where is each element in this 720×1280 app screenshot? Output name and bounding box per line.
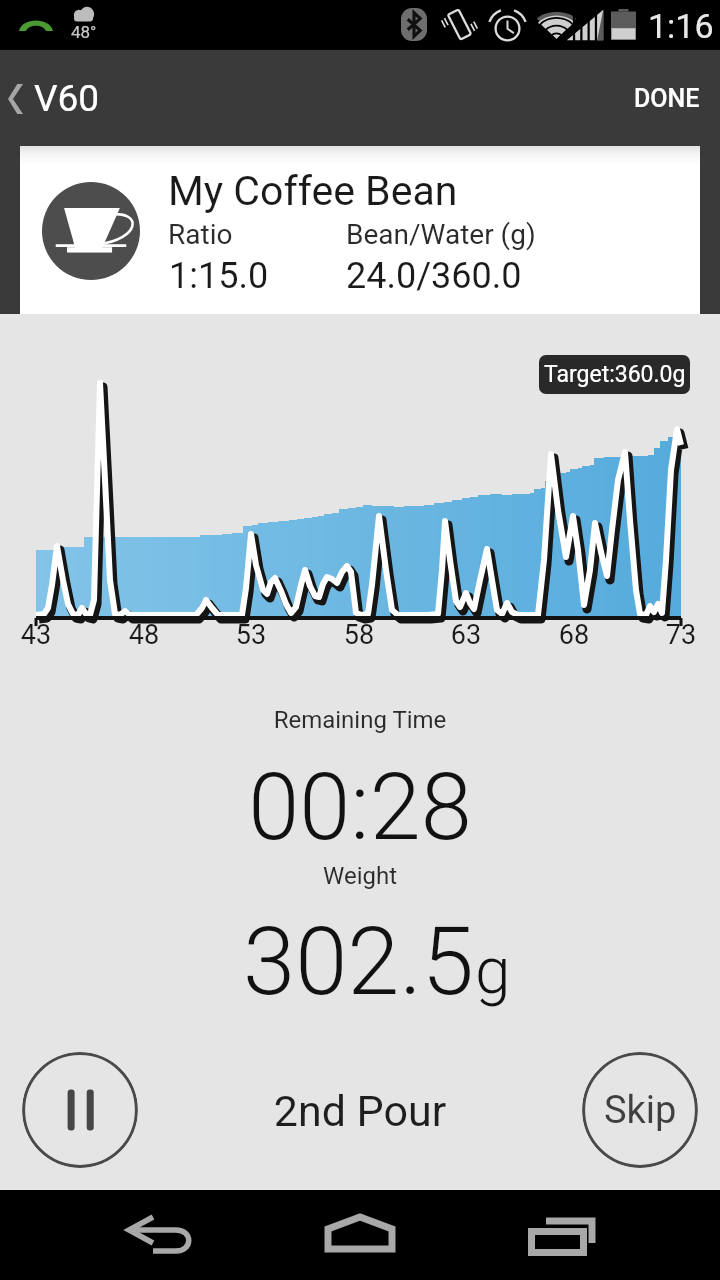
- staticText: 1:16: [648, 6, 714, 46]
- staticText: 24.0/360.0: [346, 255, 522, 297]
- staticText: 302.5: [243, 907, 475, 1017]
- staticText: 48°: [71, 22, 97, 42]
- button[interactable]: Home: [310, 1190, 410, 1280]
- button[interactable]: Skip: [582, 1052, 698, 1168]
- staticText: 53: [231, 619, 271, 651]
- staticText: 1:15.0: [169, 255, 269, 297]
- staticText: 68: [554, 619, 594, 651]
- staticText: V60: [34, 77, 100, 120]
- button[interactable]: Pause: [22, 1052, 138, 1168]
- staticText: 63: [446, 619, 486, 651]
- staticText: 2nd Pour: [0, 1086, 720, 1136]
- staticText: 48: [124, 619, 164, 651]
- staticText: Ratio: [168, 218, 233, 251]
- button[interactable]: Target:360.0g: [539, 355, 690, 394]
- staticText: My Coffee Bean: [168, 167, 458, 215]
- other: Back: [8, 84, 23, 114]
- button[interactable]: My Coffee Bean: [20, 146, 700, 314]
- button[interactable]: Recents: [510, 1190, 610, 1280]
- staticText: DONE: [634, 84, 700, 113]
- staticText: Skip: [604, 1088, 677, 1133]
- staticText: Weight: [0, 862, 720, 890]
- staticText: g: [475, 934, 511, 1009]
- staticText: Bean/Water (g): [346, 218, 536, 251]
- staticText: Target:360.0g: [544, 361, 686, 388]
- staticText: 00:28: [0, 754, 720, 862]
- button[interactable]: Back: [0, 63, 112, 134]
- button[interactable]: Back: [110, 1190, 210, 1280]
- staticText: 73: [661, 619, 701, 651]
- staticText: 58: [339, 619, 379, 651]
- staticText: Remaining Time: [0, 706, 720, 734]
- staticText: 43: [16, 619, 56, 651]
- button[interactable]: DONE: [614, 60, 720, 137]
